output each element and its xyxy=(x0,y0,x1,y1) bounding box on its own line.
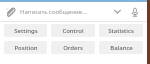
staticText: Balance xyxy=(110,44,133,52)
button[interactable]: Attach file xyxy=(4,6,16,18)
button[interactable]: Attach file xyxy=(0,2,147,21)
staticText: Control xyxy=(62,27,84,35)
button[interactable]: Balance xyxy=(99,41,143,54)
button[interactable]: Settings xyxy=(4,24,47,37)
button[interactable]: Orders xyxy=(51,41,95,54)
button[interactable]: Statistics xyxy=(99,24,143,37)
staticText: Orders xyxy=(63,44,83,52)
button[interactable]: Voice message xyxy=(128,5,141,18)
button[interactable]: Control xyxy=(51,24,95,37)
staticText: Statistics xyxy=(108,27,134,35)
staticText: Settings xyxy=(14,27,38,35)
button[interactable]: Position xyxy=(4,41,47,54)
staticText: Position xyxy=(14,44,38,52)
button[interactable]: Expand xyxy=(111,5,124,18)
staticText: Написать сообщение... xyxy=(20,8,111,16)
